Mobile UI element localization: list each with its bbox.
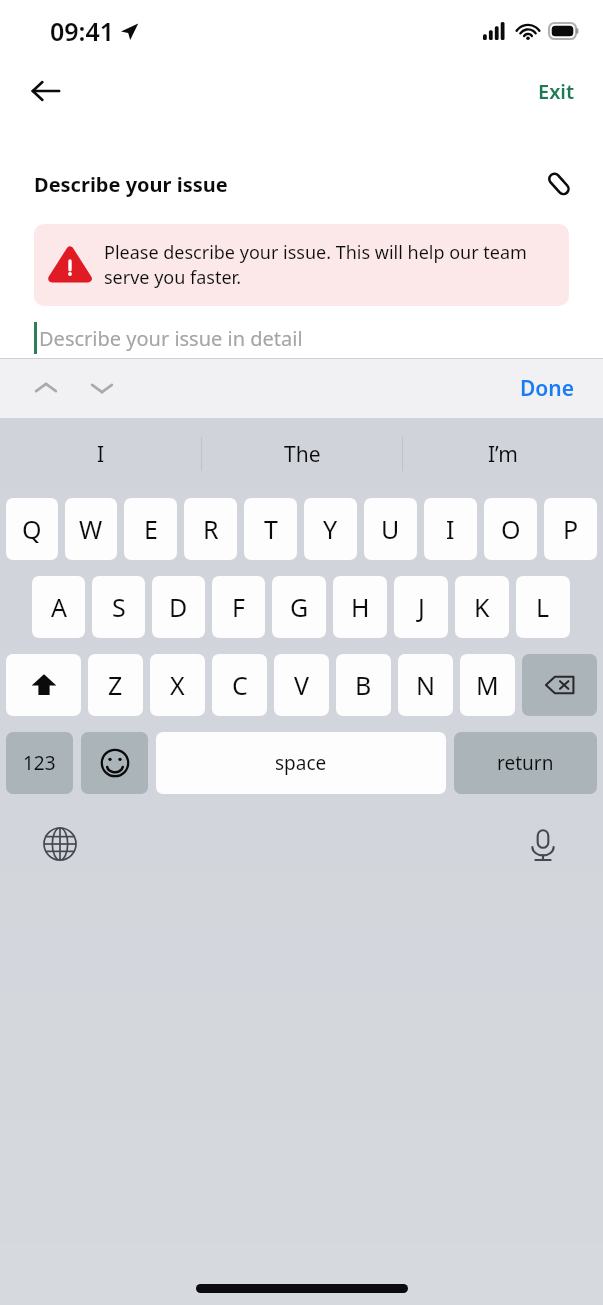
button[interactable]: V: [274, 654, 329, 716]
button[interactable]: I: [0, 418, 201, 490]
staticText: J: [418, 590, 425, 624]
button[interactable]: N: [398, 654, 453, 716]
staticText: V: [294, 668, 310, 702]
staticText: P: [563, 512, 579, 546]
staticText: S: [112, 590, 126, 624]
button[interactable]: Y: [304, 498, 357, 560]
button[interactable]: C: [212, 654, 267, 716]
staticText: X: [170, 668, 185, 702]
staticText: R: [203, 512, 219, 546]
button[interactable]: Back: [22, 67, 70, 115]
button[interactable]: Done: [512, 368, 583, 409]
staticText: space: [275, 750, 327, 776]
button[interactable]: K: [455, 576, 509, 638]
button[interactable]: space: [156, 732, 446, 794]
staticText: E: [144, 512, 158, 546]
button[interactable]: X: [150, 654, 205, 716]
button[interactable]: H: [333, 576, 387, 638]
staticText: Exit: [538, 78, 575, 105]
staticText: H: [351, 590, 370, 624]
button[interactable]: Emoji: [81, 732, 148, 794]
button[interactable]: S: [92, 576, 145, 638]
button[interactable]: P: [544, 498, 597, 560]
button[interactable]: return: [454, 732, 597, 794]
button[interactable]: Q: [6, 498, 58, 560]
button[interactable]: 123: [6, 732, 73, 794]
button[interactable]: A: [32, 576, 85, 638]
button[interactable]: Next field: [82, 368, 122, 408]
staticText: B: [355, 668, 372, 702]
button[interactable]: L: [516, 576, 570, 638]
staticText: return: [497, 750, 554, 776]
staticText: K: [474, 590, 490, 624]
staticText: W: [79, 512, 103, 546]
staticText: Please describe your issue. This will he…: [104, 240, 555, 290]
staticText: U: [381, 512, 400, 546]
staticText: 09:41: [50, 14, 115, 48]
staticText: Done: [520, 374, 575, 403]
staticText: Y: [323, 512, 338, 546]
staticText: M: [476, 668, 499, 702]
staticText: D: [169, 590, 188, 624]
button[interactable]: G: [272, 576, 326, 638]
button[interactable]: The: [202, 418, 402, 490]
button[interactable]: E: [124, 498, 177, 560]
button[interactable]: Please describe your issue. This will he…: [34, 224, 569, 306]
staticText: C: [232, 668, 248, 702]
staticText: L: [536, 590, 550, 624]
button[interactable]: M: [460, 654, 515, 716]
button[interactable]: Dictate: [517, 818, 569, 870]
button[interactable]: Exit: [530, 72, 583, 111]
button[interactable]: B: [336, 654, 391, 716]
button[interactable]: Z: [88, 654, 143, 716]
button[interactable]: Previous field: [26, 368, 66, 408]
button[interactable]: Attach file: [537, 162, 581, 206]
staticText: The: [284, 440, 321, 469]
button[interactable]: Change keyboard: [34, 818, 86, 870]
staticText: I’m: [488, 440, 518, 469]
button[interactable]: W: [65, 498, 117, 560]
button[interactable]: T: [244, 498, 297, 560]
staticText: O: [501, 512, 521, 546]
staticText: F: [232, 590, 245, 624]
staticText: G: [290, 590, 309, 624]
button[interactable]: I’m: [403, 418, 603, 490]
button[interactable]: J: [394, 576, 448, 638]
button[interactable]: F: [212, 576, 265, 638]
staticText: T: [264, 512, 278, 546]
staticText: Describe your issue in detail: [39, 325, 303, 352]
staticText: Z: [108, 668, 123, 702]
staticText: N: [416, 668, 436, 702]
staticText: Describe your issue: [34, 171, 228, 198]
button[interactable]: D: [152, 576, 205, 638]
staticText: Q: [22, 512, 42, 546]
button[interactable]: I: [424, 498, 477, 560]
staticText: I: [446, 512, 455, 546]
button[interactable]: Backspace: [522, 654, 597, 716]
button[interactable]: U: [364, 498, 417, 560]
button[interactable]: R: [184, 498, 237, 560]
staticText: 123: [23, 750, 56, 776]
button[interactable]: Shift: [6, 654, 81, 716]
staticText: A: [51, 590, 67, 624]
staticText: I: [97, 440, 105, 469]
button[interactable]: O: [484, 498, 537, 560]
